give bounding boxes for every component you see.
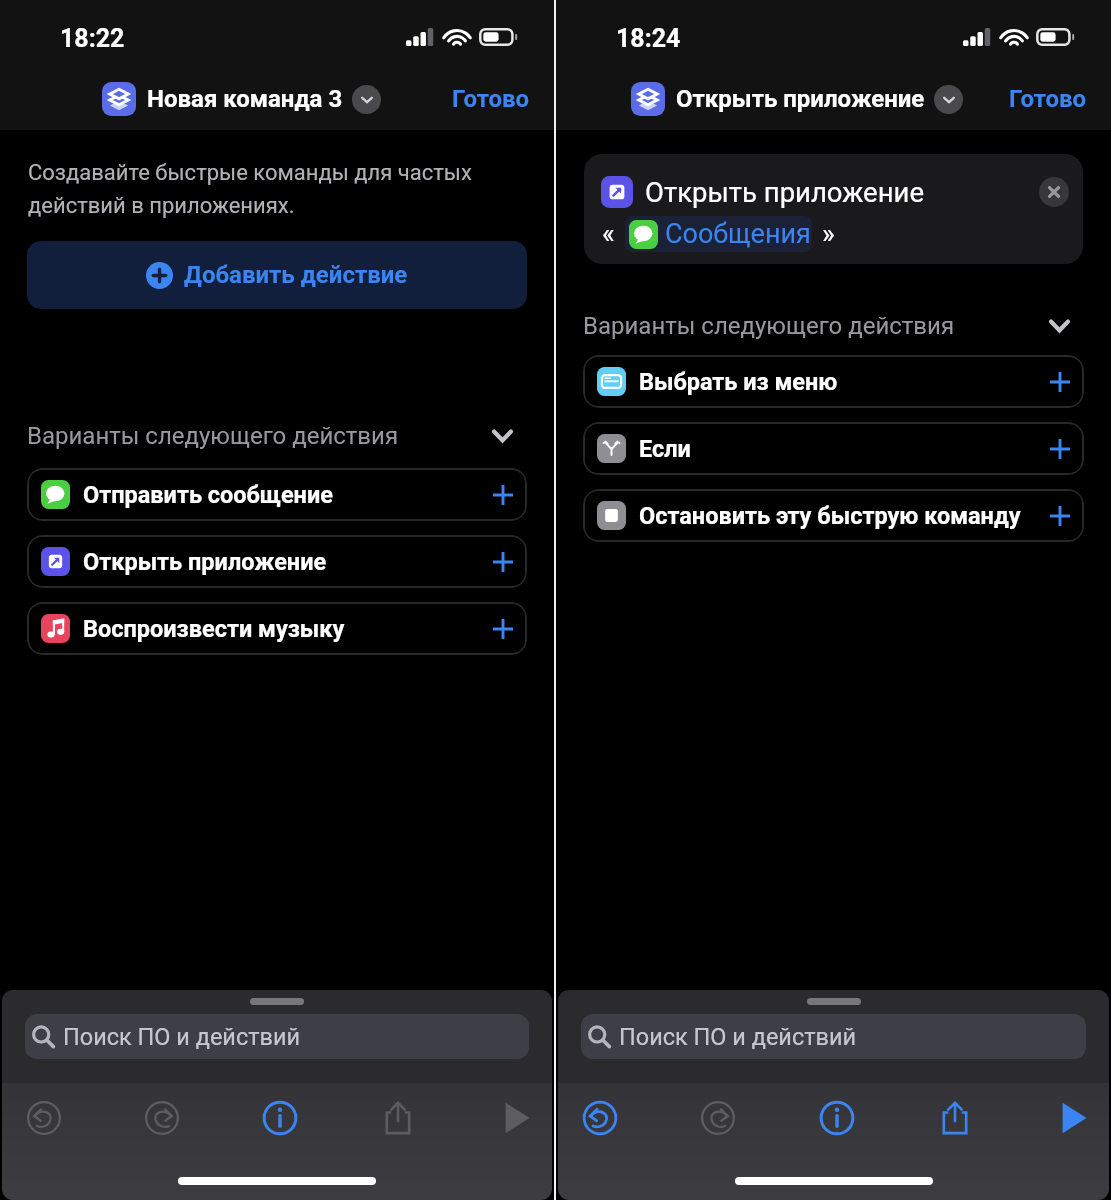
button[interactable]: Варианты следующего действия (556, 307, 1111, 345)
staticText: Выбрать из меню (639, 368, 838, 396)
staticText: Отправить сообщение (83, 481, 333, 509)
button[interactable]: Добавить действие (27, 241, 527, 309)
button[interactable]: Воспроизвести музыку (27, 602, 527, 655)
button[interactable]: Undo (18, 1092, 70, 1144)
staticText: Создавайте быстрые команды для частых де… (28, 160, 504, 218)
button[interactable]: Если (583, 422, 1084, 475)
staticText: Если (639, 435, 691, 463)
staticText: Готово (1009, 85, 1087, 113)
button[interactable]: Отправить сообщение (27, 468, 527, 521)
staticText: Готово (452, 85, 530, 113)
button[interactable]: Варианты следующего действия (0, 417, 554, 455)
button[interactable]: Сообщения (625, 216, 812, 252)
staticText: 18:24 (616, 24, 681, 53)
staticText: Открыть приложение (645, 176, 924, 208)
button[interactable]: Undo (574, 1092, 626, 1144)
button[interactable]: Share (929, 1092, 981, 1144)
button[interactable]: Поиск ПО и действий (581, 1014, 1086, 1059)
staticText: « (602, 218, 615, 250)
staticText: Варианты следующего действия (583, 312, 955, 340)
staticText: Сообщения (665, 218, 811, 250)
button[interactable]: Новая команда 3 (102, 82, 381, 116)
button[interactable]: Play (1047, 1092, 1099, 1144)
staticText: Открыть приложение (676, 85, 925, 113)
button[interactable]: Открыть приложение (631, 82, 963, 116)
staticText: Поиск ПО и действий (63, 1023, 301, 1051)
staticText: Остановить эту быструю команду (639, 502, 1021, 530)
button[interactable]: Открыть приложение (27, 535, 527, 588)
button[interactable]: Остановить эту быструю команду (583, 489, 1084, 542)
button[interactable]: Redo (692, 1092, 744, 1144)
button[interactable]: Готово (430, 77, 554, 121)
staticText: Поиск ПО и действий (619, 1023, 857, 1051)
button[interactable]: Выбрать из меню (583, 355, 1084, 408)
button[interactable]: Открыть приложение (584, 154, 1083, 264)
staticText: Варианты следующего действия (27, 422, 399, 450)
staticText: Добавить действие (184, 261, 408, 289)
button[interactable]: Info (254, 1092, 306, 1144)
button[interactable]: Play (490, 1092, 542, 1144)
staticText: Воспроизвести музыку (83, 615, 345, 643)
staticText: 18:22 (60, 24, 125, 53)
button[interactable]: Redo (136, 1092, 188, 1144)
button[interactable]: Поиск ПО и действий (25, 1014, 529, 1059)
button[interactable]: Share (372, 1092, 424, 1144)
button[interactable]: Info (811, 1092, 863, 1144)
staticText: » (822, 218, 835, 250)
staticText: Открыть приложение (83, 548, 327, 576)
button[interactable]: Remove (1039, 177, 1069, 207)
button[interactable]: Готово (987, 77, 1111, 121)
staticText: Новая команда 3 (147, 85, 343, 113)
